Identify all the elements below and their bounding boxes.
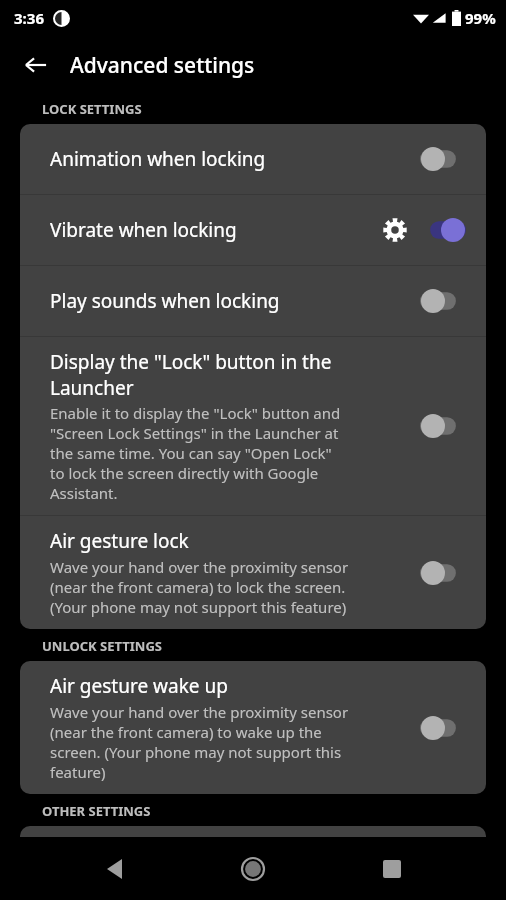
button[interactable]: Toggle off <box>420 558 466 588</box>
button[interactable]: Display the "Lock" button in the Launche… <box>20 337 486 515</box>
staticText: Display the "Lock" button in the Launche… <box>50 349 332 400</box>
button[interactable]: Toggle on <box>420 215 466 245</box>
button[interactable]: Recent apps <box>368 845 416 893</box>
button[interactable]: Animation when locking <box>20 124 486 194</box>
button[interactable]: Play sounds when locking <box>20 266 486 336</box>
button[interactable]: Air gesture wake up <box>20 661 486 794</box>
staticText: Air gesture lock <box>50 528 189 554</box>
button[interactable]: Toggle off <box>420 144 466 174</box>
staticText: Play sounds when locking <box>50 288 280 314</box>
button[interactable]: Back <box>16 45 56 85</box>
staticText: Wave your hand over the proximity sensor… <box>50 702 349 782</box>
button[interactable]: Home <box>229 845 277 893</box>
staticText: OTHER SETTINGS <box>42 802 151 820</box>
button[interactable]: Air gesture lock <box>20 516 486 629</box>
button[interactable]: Toggle off <box>420 411 466 441</box>
button[interactable]: Toggle off <box>420 286 466 316</box>
staticText: LOCK SETTINGS <box>42 100 142 118</box>
staticText: Enable it to display the "Lock" button a… <box>50 403 341 503</box>
button[interactable]: Vibration settings <box>378 213 412 247</box>
staticText: 99% <box>465 8 496 28</box>
staticText: UNLOCK SETTINGS <box>42 637 162 655</box>
staticText: Wave your hand over the proximity sensor… <box>50 557 349 617</box>
button[interactable]: Back <box>91 845 139 893</box>
button[interactable]: Toggle off <box>420 713 466 743</box>
staticText: Air gesture wake up <box>50 673 228 699</box>
staticText: Vibrate when locking <box>50 217 237 243</box>
button[interactable]: Vibrate when locking <box>20 195 486 265</box>
staticText: Animation when locking <box>50 146 266 172</box>
staticText: Advanced settings <box>70 51 255 80</box>
staticText: 3:36 <box>14 8 44 28</box>
